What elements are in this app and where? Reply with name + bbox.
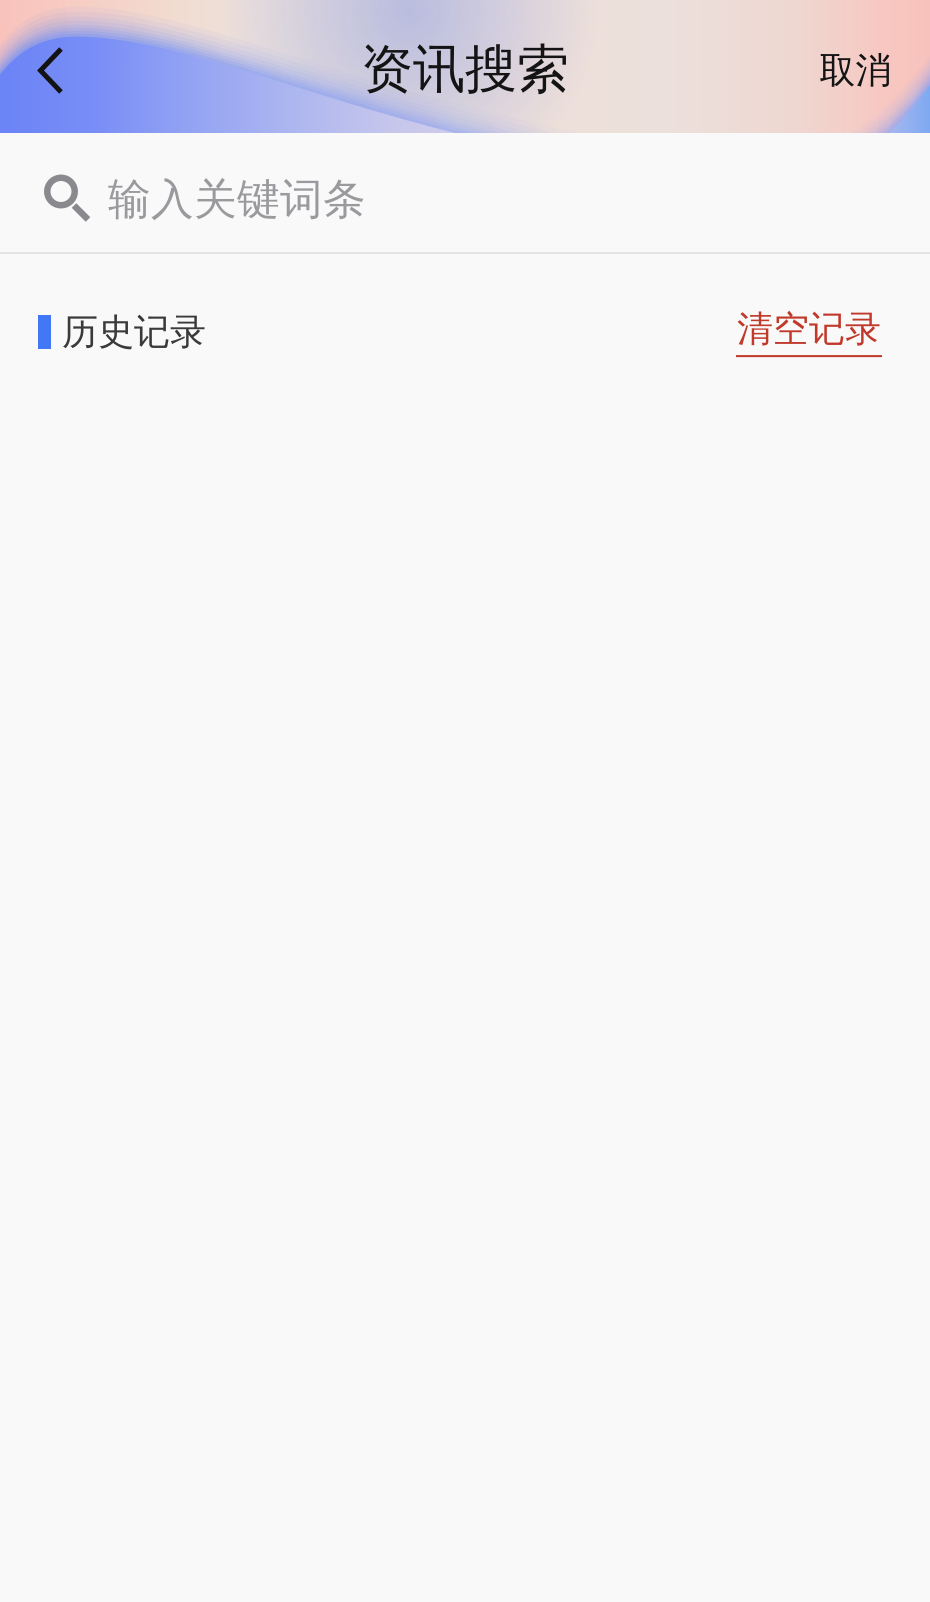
button[interactable]: 输入关键词条 <box>0 133 930 252</box>
button[interactable]: 取消 <box>781 0 930 133</box>
button[interactable]: Back <box>0 0 101 133</box>
button[interactable]: 清空记录 <box>736 307 882 357</box>
staticText: 输入关键词条 <box>108 173 366 226</box>
staticText: 清空记录 <box>737 307 881 351</box>
staticText: 取消 <box>819 48 891 93</box>
staticText: 历史记录 <box>62 310 206 354</box>
staticText: 资讯搜索 <box>361 38 569 101</box>
